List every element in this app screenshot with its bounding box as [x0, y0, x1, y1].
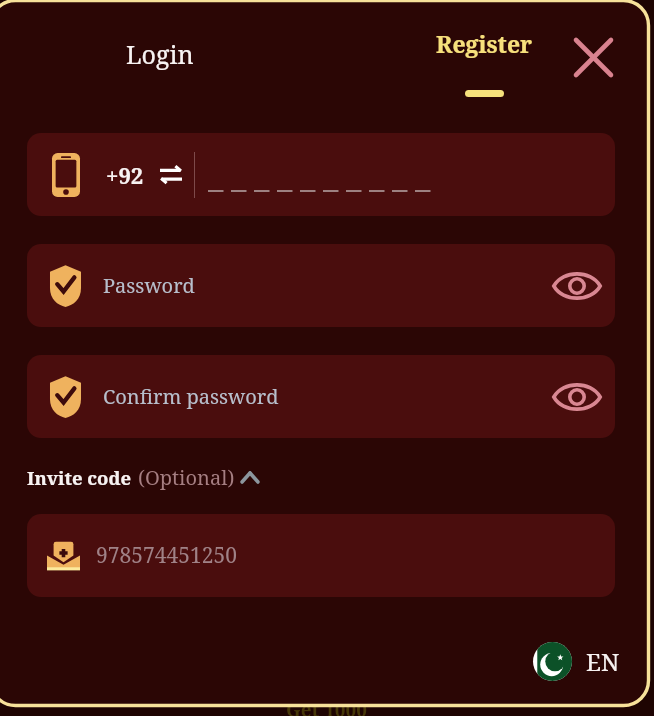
button[interactable]: EN [533, 637, 620, 685]
staticText: Register [436, 28, 533, 59]
button[interactable]: Show password [550, 370, 604, 424]
button[interactable]: Invite code [20, 458, 267, 496]
staticText: Get 1000 [286, 697, 368, 716]
staticText: 978574451250 [96, 541, 237, 570]
staticText: Invite code [27, 465, 132, 490]
staticText: +92 [106, 160, 144, 190]
button[interactable]: Register [424, 28, 544, 98]
button[interactable]: Show password [550, 259, 604, 313]
button[interactable]: Confirm password [27, 355, 615, 438]
button[interactable]: Close [564, 28, 622, 86]
staticText: (Optional) [138, 464, 235, 491]
button[interactable]: 978574451250 [27, 514, 615, 597]
button[interactable]: Password [27, 244, 615, 327]
button[interactable]: +92 [27, 133, 615, 216]
staticText: EN [586, 645, 620, 678]
staticText: Confirm password [103, 383, 279, 410]
staticText: Login [126, 37, 194, 71]
staticText: Password [103, 272, 195, 299]
button[interactable]: Login [98, 28, 222, 80]
